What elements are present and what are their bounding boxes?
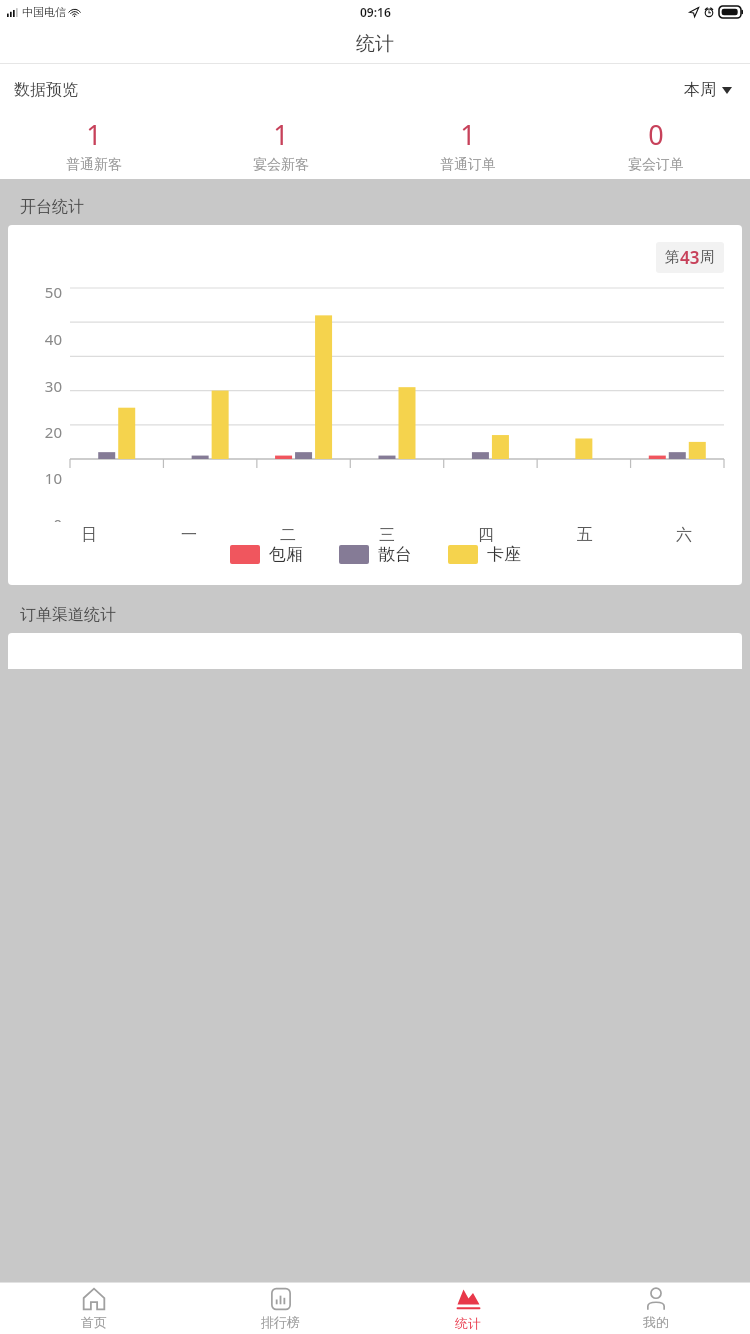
- staticText: 统计: [356, 32, 394, 56]
- staticText: 09:16: [360, 4, 391, 20]
- staticText: 六: [676, 525, 692, 545]
- staticText: 包厢: [269, 544, 303, 565]
- button[interactable]: 第: [656, 242, 724, 273]
- button[interactable]: 排行榜: [187, 1283, 374, 1334]
- staticText: 宴会新客: [253, 156, 309, 174]
- staticText: 43: [680, 246, 700, 269]
- button[interactable]: 包厢: [230, 544, 303, 565]
- staticText: 30: [44, 376, 62, 396]
- staticText: 第: [665, 248, 680, 267]
- button[interactable]: 1: [0, 116, 187, 174]
- button[interactable]: 散台: [339, 544, 412, 565]
- staticText: 1: [273, 116, 289, 153]
- button[interactable]: 1: [374, 116, 562, 174]
- button[interactable]: 卡座: [448, 544, 521, 565]
- button[interactable]: 本周: [680, 78, 736, 102]
- staticText: 首页: [81, 1314, 107, 1330]
- staticText: 40: [44, 329, 62, 349]
- staticText: 排行榜: [261, 1314, 300, 1330]
- staticText: 10: [44, 468, 62, 488]
- staticText: 订单渠道统计: [20, 605, 116, 625]
- staticText: 二: [280, 525, 296, 545]
- staticText: 数据预览: [14, 80, 78, 100]
- button[interactable]: 统计: [374, 1283, 562, 1334]
- staticText: 普通订单: [440, 156, 496, 174]
- staticText: 普通新客: [66, 156, 122, 174]
- staticText: 五: [577, 525, 593, 545]
- staticText: 宴会订单: [628, 156, 684, 174]
- staticText: 卡座: [487, 544, 521, 565]
- staticText: 我的: [643, 1314, 669, 1330]
- staticText: 0: [53, 514, 62, 522]
- staticText: 1: [460, 116, 476, 153]
- staticText: 日: [81, 525, 97, 545]
- staticText: 开台统计: [20, 197, 84, 217]
- staticText: 散台: [378, 544, 412, 565]
- button[interactable]: 首页: [0, 1283, 187, 1334]
- staticText: 20: [44, 422, 62, 442]
- staticText: 周: [700, 248, 715, 267]
- button[interactable]: 0: [562, 116, 750, 174]
- staticText: 中国电信: [22, 5, 66, 19]
- staticText: 50: [44, 282, 62, 302]
- staticText: 三: [379, 525, 395, 545]
- staticText: 本周: [684, 80, 716, 100]
- button[interactable]: 我的: [562, 1283, 750, 1334]
- staticText: 一: [181, 525, 197, 545]
- staticText: 0: [648, 116, 664, 153]
- button[interactable]: 1: [187, 116, 374, 174]
- staticText: 1: [86, 116, 102, 153]
- staticText: 四: [478, 525, 494, 545]
- staticText: 统计: [455, 1315, 481, 1331]
